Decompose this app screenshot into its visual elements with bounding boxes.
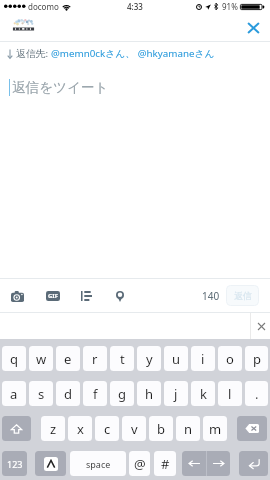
staticText: d [64,385,72,403]
button[interactable]: e [56,346,80,371]
staticText: r [92,350,98,368]
staticText: @memn0ckさん、 @hkyamaneさん [51,47,215,60]
button[interactable]: . [245,381,268,406]
staticText: q [10,350,18,368]
staticText: GIF [48,292,58,300]
staticText: k [200,385,207,403]
button[interactable]: z [41,416,65,441]
staticText: docomo [28,1,59,12]
button[interactable]: Move right [206,451,230,476]
staticText: c [104,420,111,438]
button[interactable]: Enter [239,451,268,476]
staticText: . [255,385,259,403]
button[interactable]: n [176,416,200,441]
button[interactable]: 返信 [226,285,259,306]
staticText: 返信先: [16,47,51,60]
button[interactable]: @ [129,451,150,476]
staticText: # [161,455,170,473]
staticText: i [201,350,205,368]
button[interactable]: # [154,451,176,476]
button[interactable]: g [110,381,134,406]
button[interactable]: Location [106,282,134,310]
button[interactable]: u [164,346,188,371]
button[interactable]: y [137,346,161,371]
staticText: e [64,350,72,368]
button[interactable]: Camera [3,282,31,310]
button[interactable]: q [2,346,26,371]
staticText: 返信 [234,290,252,301]
button[interactable]: Switch keyboard [35,451,66,476]
staticText: n [184,420,193,438]
button[interactable]: w [29,346,53,371]
staticText: j [174,385,178,403]
button[interactable]: j [164,381,188,406]
button[interactable]: a [2,381,26,406]
staticText: @ [134,455,146,473]
button[interactable]: Hide keyboard [250,313,270,339]
staticText: 4:33 [127,1,143,12]
staticText: s [38,385,45,403]
button[interactable]: Shift [2,416,31,441]
button[interactable]: t [110,346,134,371]
button[interactable]: k [191,381,215,406]
staticText: t [120,350,125,368]
staticText: z [50,420,57,438]
button[interactable]: f [83,381,107,406]
button[interactable]: s [29,381,53,406]
staticText: a [10,385,18,403]
staticText: m [209,420,222,438]
button[interactable]: x [68,416,92,441]
staticText: 返信をツイート [12,79,109,96]
staticText: v [131,420,138,438]
button[interactable]: p [245,346,268,371]
button[interactable]: Close [239,14,267,41]
button[interactable]: GIF [39,282,67,310]
button[interactable]: r [83,346,107,371]
staticText: w [36,350,47,368]
button[interactable]: Backspace [237,416,267,441]
staticText: f [93,385,98,403]
staticText: x [77,420,84,438]
staticText: o [226,350,234,368]
staticText: g [118,385,126,403]
staticText: y [146,350,153,368]
button[interactable]: l [218,381,242,406]
button[interactable]: space [70,451,126,476]
button[interactable]: Poll [72,282,100,310]
button[interactable]: m [203,416,227,441]
staticText: b [157,420,165,438]
staticText: l [228,385,232,403]
button[interactable]: i [191,346,215,371]
staticText: h [145,385,154,403]
staticText: p [253,350,261,368]
staticText: 140 [202,289,220,303]
staticText: 123 [7,458,23,470]
staticText: u [172,350,181,368]
button[interactable]: c [95,416,119,441]
staticText: 91% [222,1,238,12]
button[interactable]: v [122,416,146,441]
button[interactable]: b [149,416,173,441]
button[interactable]: Move left [182,451,206,476]
button[interactable]: d [56,381,80,406]
staticText: space [86,458,111,470]
button[interactable]: o [218,346,242,371]
button[interactable]: 123 [2,451,27,476]
button[interactable]: h [137,381,161,406]
